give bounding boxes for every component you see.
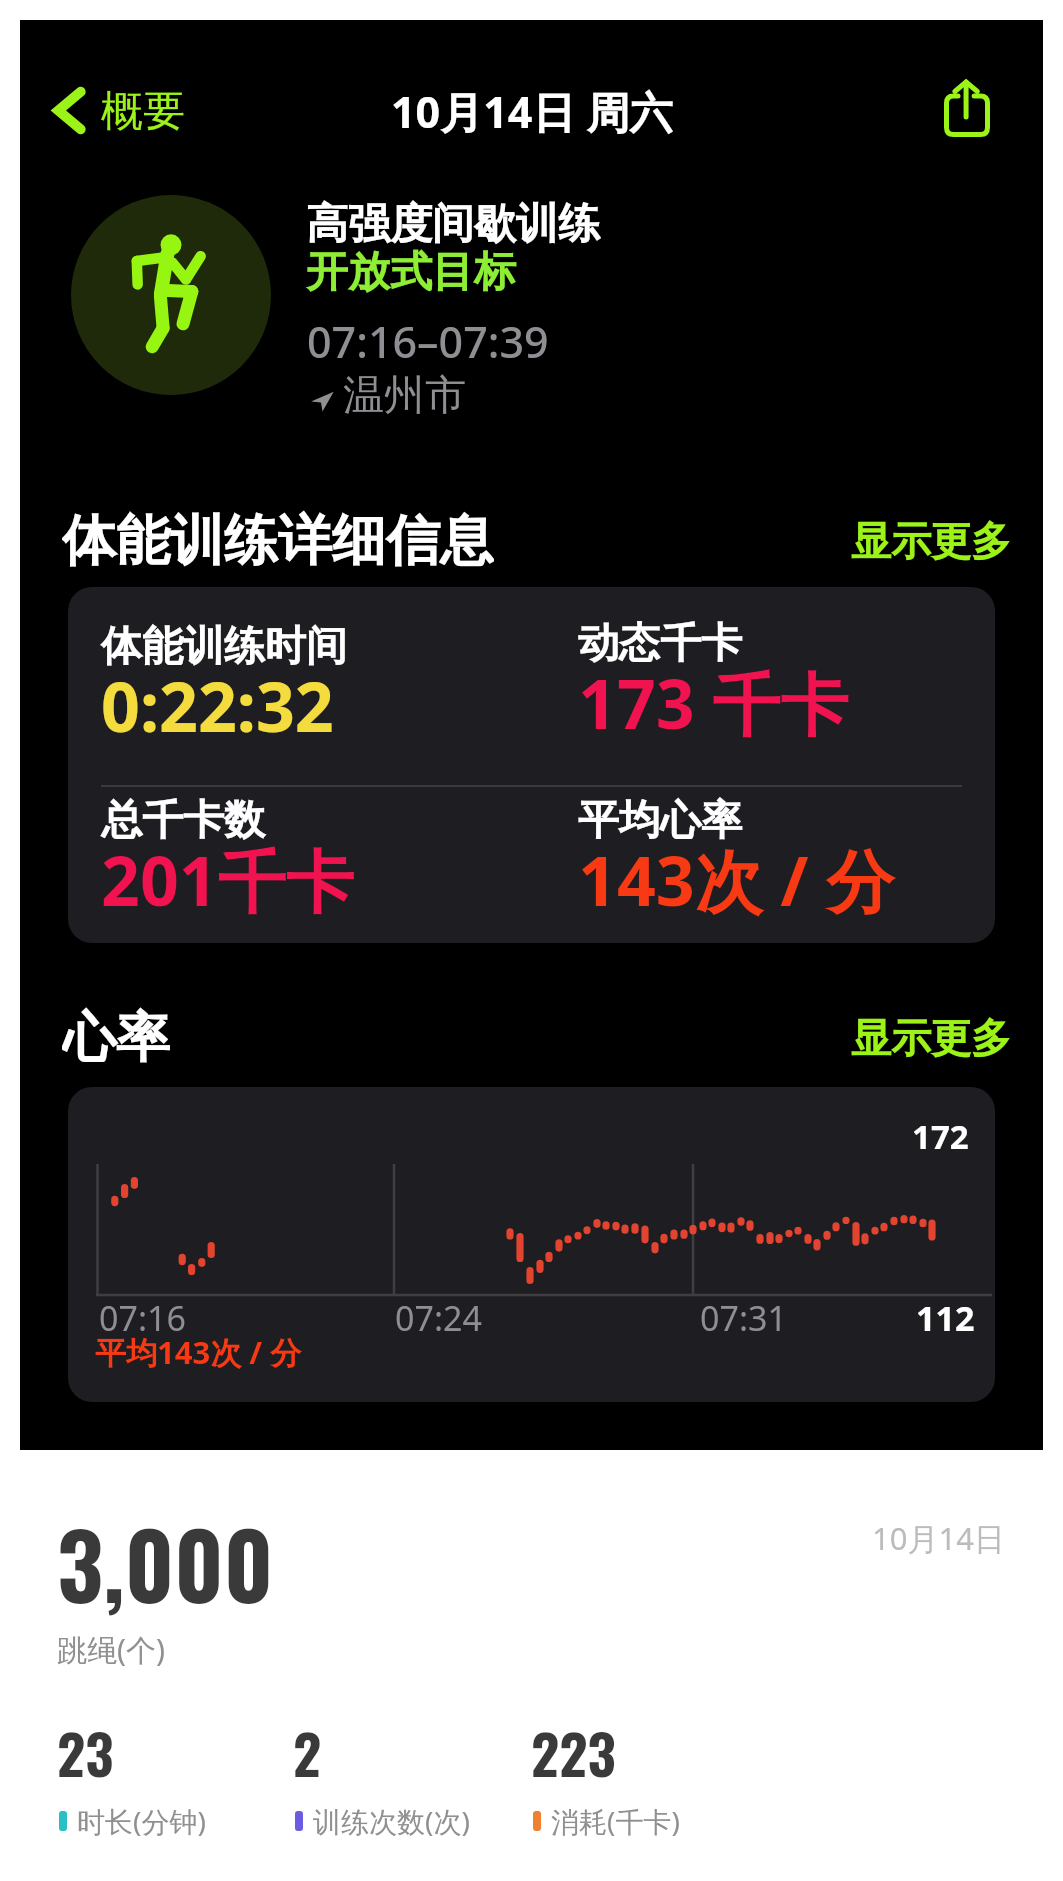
- staticText: 显示更多: [851, 1013, 1011, 1063]
- staticText: 体能训练时间: [101, 621, 347, 673]
- staticText: 总千卡数: [101, 795, 265, 847]
- staticText: 10月14日 周六: [391, 82, 673, 141]
- staticText: 体能训练详细信息: [62, 507, 494, 567]
- staticText: 跳绳(个): [57, 1629, 165, 1670]
- button[interactable]: Share: [930, 65, 1010, 145]
- staticText: 0:22:32: [101, 659, 334, 752]
- staticText: 07:31: [700, 1295, 787, 1341]
- staticText: 07:16–07:39: [307, 312, 549, 371]
- staticText: 训练次数(次): [313, 1802, 470, 1840]
- button[interactable]: 显示更多: [851, 516, 1011, 566]
- staticText: 201千卡: [101, 833, 354, 926]
- staticText: 概要: [101, 85, 185, 138]
- staticText: 动态千卡: [578, 618, 742, 670]
- staticText: 平均143次 / 分: [95, 1331, 302, 1373]
- staticText: 143次 / 分: [578, 833, 895, 926]
- button[interactable]: 概要: [20, 78, 199, 143]
- staticText: 显示更多: [851, 516, 1011, 566]
- button[interactable]: 显示更多: [851, 1013, 1011, 1063]
- staticText: 07:16: [99, 1295, 186, 1341]
- staticText: 心率: [62, 1004, 170, 1064]
- staticText: 10月14日: [872, 1517, 1005, 1559]
- staticText: 时长(分钟): [77, 1802, 206, 1840]
- staticText: 2: [293, 1711, 322, 1793]
- staticText: 高强度间歇训练: [306, 198, 600, 251]
- staticText: 172: [912, 1114, 969, 1159]
- staticText: 平均心率: [578, 795, 742, 847]
- staticText: 3,000: [57, 1496, 274, 1629]
- staticText: 23: [57, 1711, 114, 1793]
- staticText: 温州市: [343, 370, 466, 422]
- staticText: 112: [916, 1295, 975, 1341]
- staticText: 开放式目标: [306, 246, 516, 299]
- staticText: 07:24: [395, 1295, 482, 1341]
- staticText: 173 千卡: [578, 656, 849, 749]
- staticText: 223: [531, 1711, 616, 1793]
- staticText: 消耗(千卡): [551, 1802, 680, 1840]
